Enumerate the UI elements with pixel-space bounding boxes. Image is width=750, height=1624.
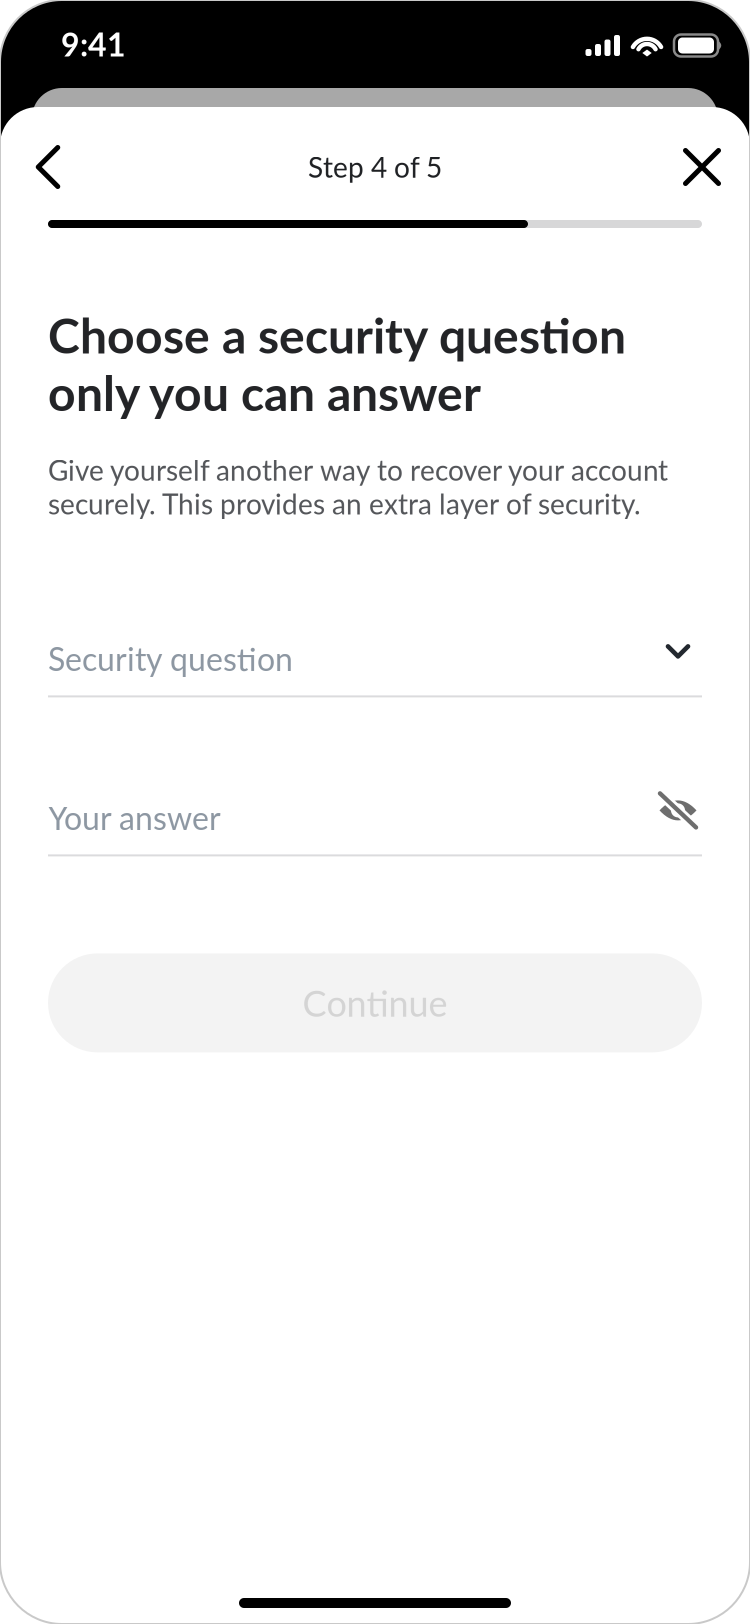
staticText: Give yourself another way to recover you… bbox=[48, 453, 668, 520]
button[interactable]: Back bbox=[12, 131, 84, 203]
staticText: Continue bbox=[302, 981, 447, 1024]
staticText: 9:41 bbox=[61, 25, 126, 63]
staticText: Choose a security question only you can … bbox=[48, 306, 626, 421]
button[interactable]: Close bbox=[666, 131, 738, 203]
staticText: Your answer bbox=[48, 798, 221, 837]
button[interactable]: Continue bbox=[48, 953, 702, 1052]
staticText: Security question bbox=[48, 639, 293, 678]
button[interactable]: Security question bbox=[48, 638, 702, 697]
staticText: Step 4 of 5 bbox=[308, 150, 442, 184]
button[interactable]: Show answer bbox=[650, 788, 702, 832]
